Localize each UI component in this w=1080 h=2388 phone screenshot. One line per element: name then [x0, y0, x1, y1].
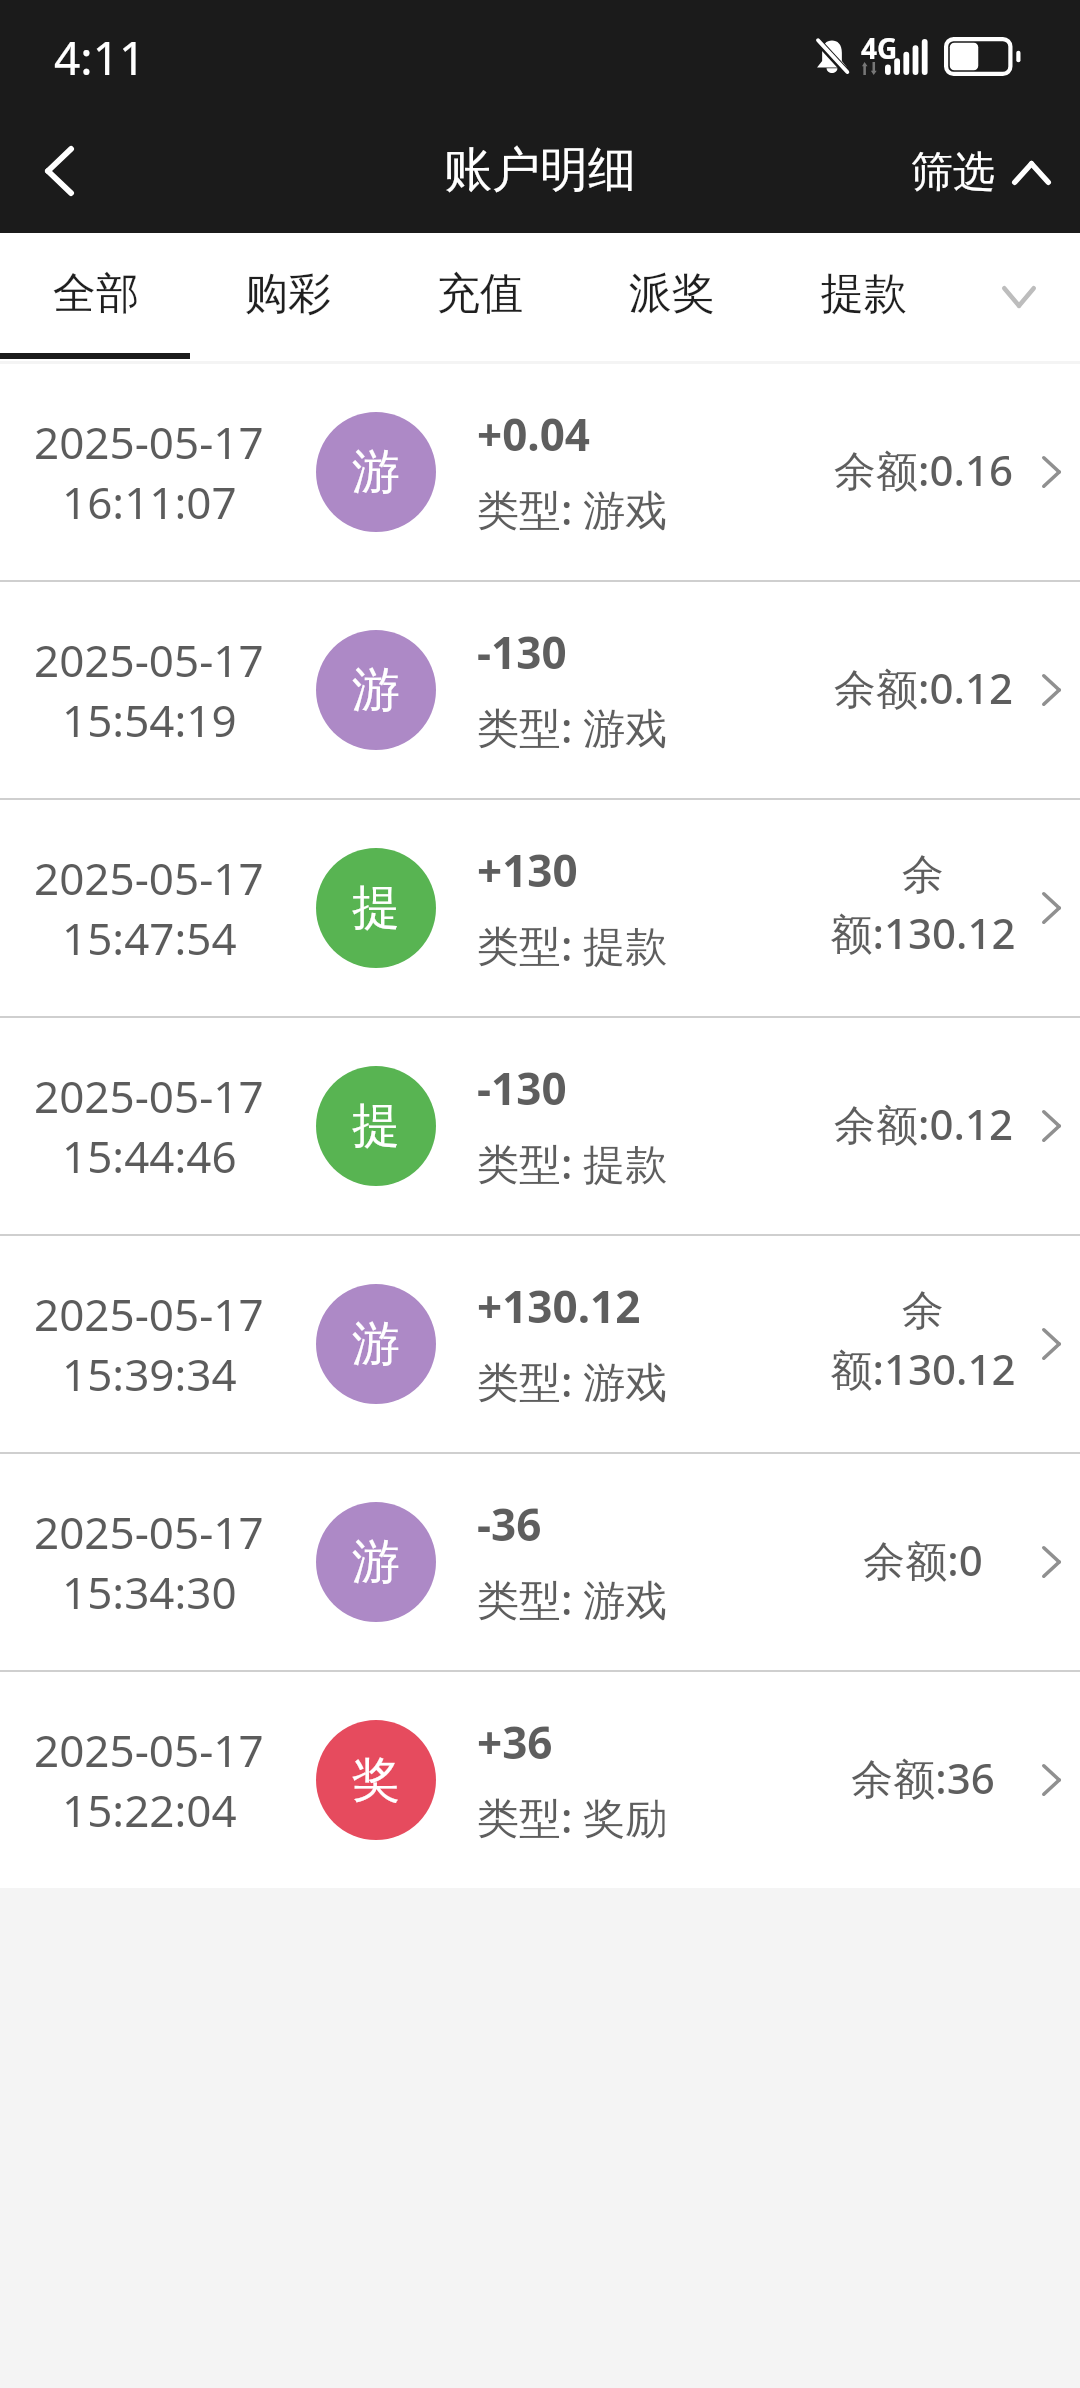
staticText: 15:34:30	[62, 1562, 237, 1622]
staticText: 游	[352, 1314, 400, 1374]
staticText: 2025-05-17	[34, 1502, 264, 1562]
staticText: 余额:130.12	[825, 1285, 1021, 1397]
staticText: 游	[352, 1532, 400, 1592]
staticText: 类型: 游戏	[477, 1352, 668, 1409]
staticText: 16:11:07	[62, 472, 237, 532]
staticText: 2025-05-17	[34, 1066, 264, 1126]
staticText: 余额:0.12	[834, 1095, 1013, 1152]
button[interactable]: 购彩	[192, 233, 384, 355]
button[interactable]: 充值	[384, 233, 576, 355]
staticText: -36	[477, 1494, 542, 1554]
staticText: 4G	[861, 29, 898, 66]
button[interactable]: 筛选	[911, 112, 1051, 233]
button[interactable]: 2025-05-17	[0, 1236, 1080, 1452]
button[interactable]: 2025-05-17	[0, 1018, 1080, 1234]
staticText: 类型: 游戏	[477, 1570, 668, 1627]
staticText: 2025-05-17	[34, 630, 264, 690]
staticText: 余额:36	[851, 1749, 995, 1806]
staticText: 购彩	[245, 267, 331, 321]
staticText: +36	[477, 1712, 553, 1772]
staticText: 派奖	[629, 267, 715, 321]
staticText: 提	[352, 878, 400, 938]
button[interactable]: 提款	[768, 233, 960, 355]
staticText: 提	[352, 1096, 400, 1156]
staticText: 全部	[53, 267, 139, 321]
staticText: 充值	[437, 267, 523, 321]
staticText: +130.12	[477, 1276, 641, 1336]
staticText: 提款	[821, 267, 907, 321]
button[interactable]: 2025-05-17	[0, 364, 1080, 580]
staticText: -130	[477, 1058, 567, 1118]
staticText: 类型: 游戏	[477, 698, 668, 755]
staticText: 游	[352, 660, 400, 720]
button[interactable]: 派奖	[576, 233, 768, 355]
staticText: 筛选	[911, 146, 995, 199]
staticText: 余额:0	[863, 1531, 983, 1588]
staticText: +130	[477, 840, 578, 900]
staticText: 类型: 奖励	[477, 1788, 668, 1845]
staticText: 游	[352, 442, 400, 502]
staticText: 类型: 游戏	[477, 480, 668, 537]
button[interactable]: 2025-05-17	[0, 1454, 1080, 1670]
staticText: 账户明细	[444, 140, 636, 200]
staticText: 类型: 提款	[477, 916, 668, 973]
button[interactable]: 2025-05-17	[0, 1672, 1080, 1888]
staticText: 类型: 提款	[477, 1134, 668, 1191]
button[interactable]: 2025-05-17	[0, 800, 1080, 1016]
staticText: 2025-05-17	[34, 848, 264, 908]
staticText: 2025-05-17	[34, 412, 264, 472]
button[interactable]: More filters	[960, 233, 1080, 355]
staticText: +0.04	[477, 404, 591, 464]
button[interactable]: 全部	[0, 233, 192, 355]
staticText: 余额:0.12	[834, 659, 1013, 716]
staticText: -130	[477, 622, 567, 682]
button[interactable]: 2025-05-17	[0, 582, 1080, 798]
staticText: 4:11	[54, 26, 146, 89]
staticText: 15:44:46	[62, 1126, 237, 1186]
staticText: 奖	[352, 1750, 400, 1810]
staticText: 15:47:54	[62, 908, 237, 968]
staticText: 2025-05-17	[34, 1720, 264, 1780]
staticText: 余额:0.16	[834, 441, 1013, 498]
staticText: 2025-05-17	[34, 1284, 264, 1344]
staticText: 15:54:19	[62, 690, 237, 750]
button[interactable]: Back	[0, 110, 129, 231]
staticText: 15:39:34	[62, 1344, 237, 1404]
staticText: 余额:130.12	[825, 849, 1021, 961]
staticText: 15:22:04	[62, 1780, 237, 1840]
